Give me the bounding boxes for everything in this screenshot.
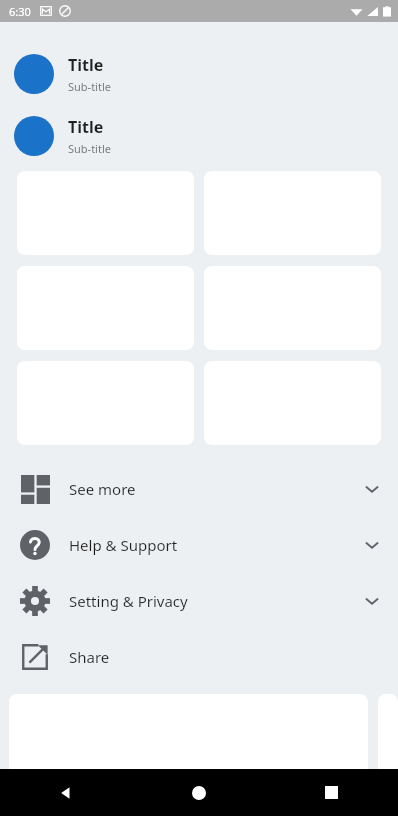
other: See more: [18, 472, 52, 506]
other: Settings and Privacy: [18, 584, 52, 618]
staticText: Sub-title: [68, 79, 111, 94]
staticText: Setting & Privacy: [69, 591, 188, 611]
other: Share: [18, 640, 52, 674]
button[interactable]: Title: [0, 116, 398, 156]
button[interactable]: Home: [132, 769, 265, 816]
button[interactable]: See more: [0, 461, 398, 517]
button[interactable]: Title: [0, 54, 398, 94]
button[interactable]: Recent apps: [265, 769, 398, 816]
staticText: Title: [68, 54, 104, 76]
staticText: 6:30: [9, 4, 31, 19]
staticText: Sub-title: [68, 141, 111, 156]
button[interactable]: Share: [0, 629, 398, 685]
staticText: See more: [69, 479, 136, 499]
button[interactable]: [378, 694, 398, 774]
other: Help and Support: [18, 528, 52, 562]
button[interactable]: Back: [0, 769, 132, 816]
button[interactable]: Settings and Privacy: [0, 573, 398, 629]
button[interactable]: Help and Support: [0, 517, 398, 573]
button[interactable]: [9, 694, 368, 774]
staticText: Title: [68, 116, 104, 138]
staticText: Help & Support: [69, 535, 178, 555]
staticText: Share: [69, 647, 110, 667]
